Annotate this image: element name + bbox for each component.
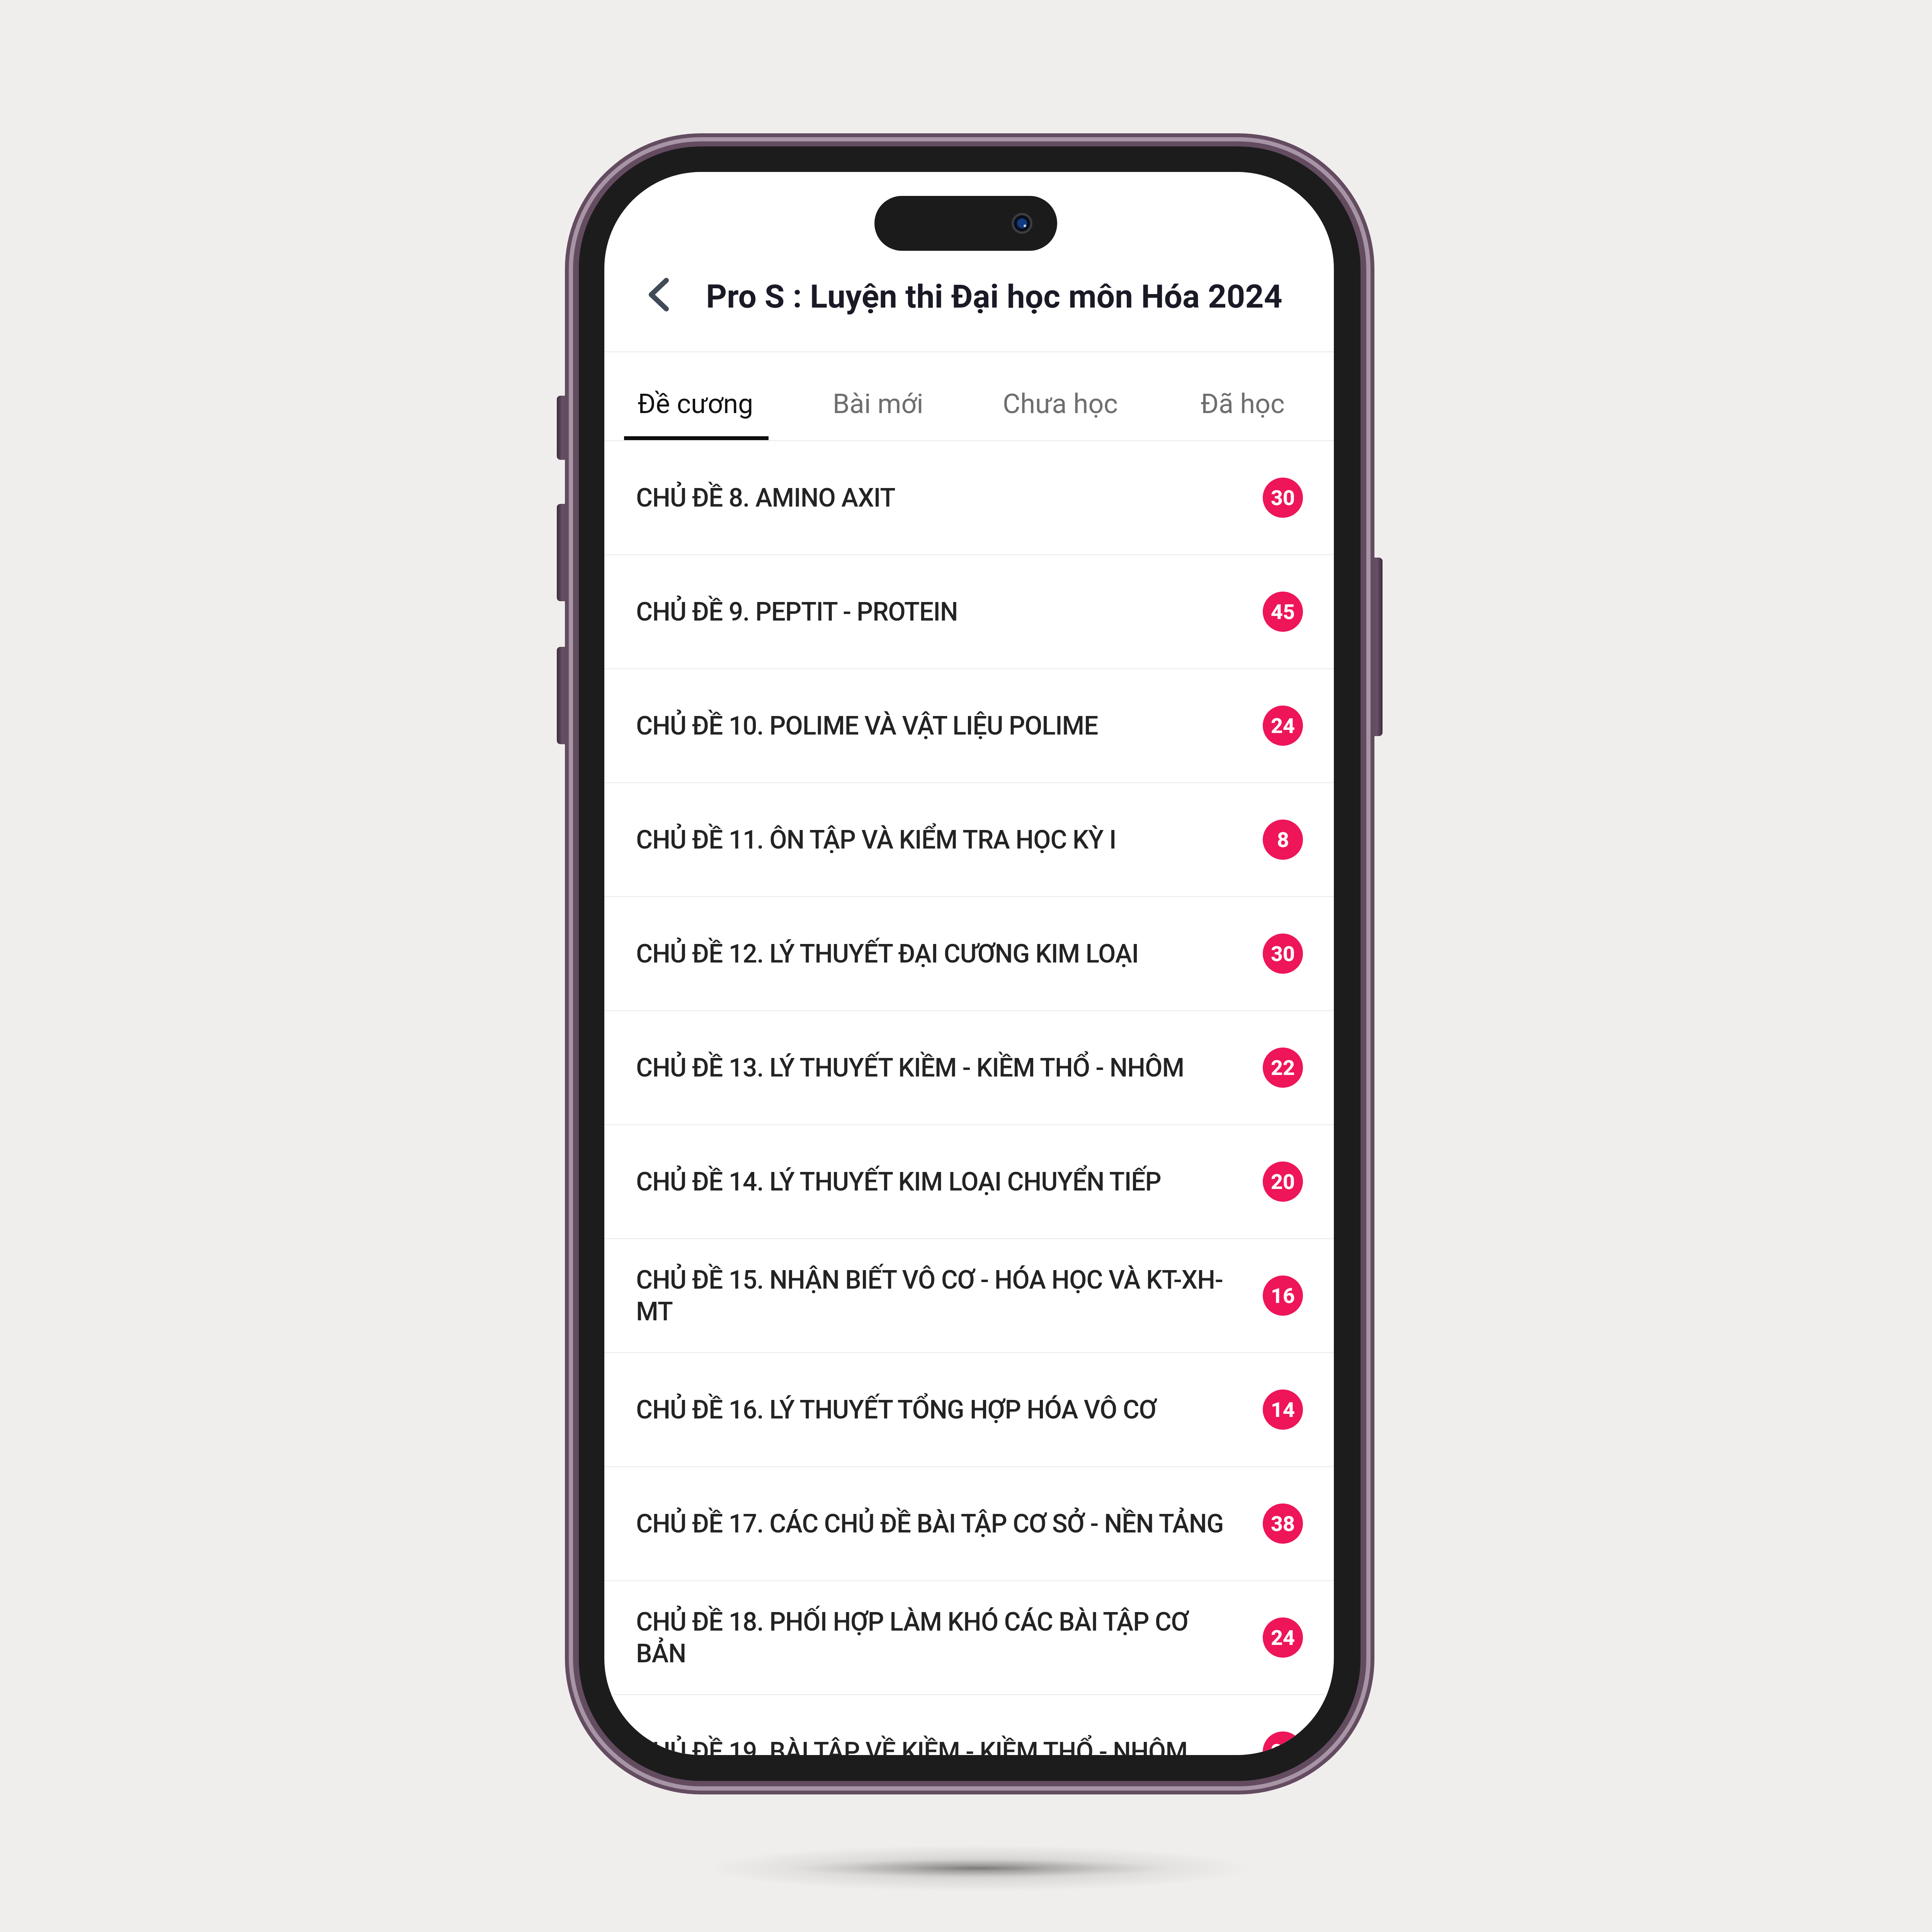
staticText: 45 (1271, 600, 1295, 624)
button[interactable]: CHỦ ĐỀ 11. ÔN TẬP VÀ KIỂM TRA HỌC KỲ I (604, 783, 1334, 896)
staticText: Chưa học (1003, 388, 1118, 420)
staticText: 8 (1277, 828, 1289, 852)
button[interactable]: CHỦ ĐỀ 8. AMINO AXIT (604, 441, 1334, 554)
staticText: 14 (1271, 1398, 1295, 1422)
staticText: Pro S : Luyện thi Đại học môn Hóa 2024 (706, 277, 1282, 315)
staticText: CHỦ ĐỀ 11. ÔN TẬP VÀ KIỂM TRA HỌC KỲ I (636, 825, 1239, 855)
button[interactable]: CHỦ ĐỀ 13. LÝ THUYẾT KIỀM - KIỀM THỔ - N… (604, 1011, 1334, 1124)
staticText: CHỦ ĐỀ 19. BÀI TẬP VỀ KIỀM - KIỀM THỔ - … (636, 1737, 1239, 1755)
button[interactable]: CHỦ ĐỀ 15. NHẬN BIẾT VÔ CƠ - HÓA HỌC VÀ … (604, 1239, 1334, 1352)
staticText: CHỦ ĐỀ 18. PHỐI HỢP LÀM KHÓ CÁC BÀI TẬP … (636, 1607, 1239, 1668)
button[interactable]: Đề cương (604, 352, 787, 440)
button[interactable]: CHỦ ĐỀ 12. LÝ THUYẾT ĐẠI CƯƠNG KIM LOẠI (604, 897, 1334, 1010)
staticText: Bài mới (833, 388, 923, 420)
staticText: CHỦ ĐỀ 13. LÝ THUYẾT KIỀM - KIỀM THỔ - N… (636, 1053, 1239, 1083)
staticText: CHỦ ĐỀ 16. LÝ THUYẾT TỔNG HỢP HÓA VÔ CƠ (636, 1395, 1239, 1425)
staticText: CHỦ ĐỀ 9. PEPTIT - PROTEIN (636, 597, 1239, 627)
button[interactable]: CHỦ ĐỀ 10. POLIME VÀ VẬT LIỆU POLIME (604, 669, 1334, 782)
button[interactable]: Chưa học (969, 352, 1151, 440)
staticText: CHỦ ĐỀ 8. AMINO AXIT (636, 483, 1239, 513)
button[interactable]: CHỦ ĐỀ 16. LÝ THUYẾT TỔNG HỢP HÓA VÔ CƠ (604, 1353, 1334, 1466)
staticText: CHỦ ĐỀ 14. LÝ THUYẾT KIM LOẠI CHUYỂN TIẾ… (636, 1167, 1239, 1197)
staticText: CHỦ ĐỀ 10. POLIME VÀ VẬT LIỆU POLIME (636, 711, 1239, 741)
button[interactable]: Bài mới (787, 352, 969, 440)
button[interactable]: CHỦ ĐỀ 19. BÀI TẬP VỀ KIỀM - KIỀM THỔ - … (604, 1695, 1334, 1755)
staticText: CHỦ ĐỀ 17. CÁC CHỦ ĐỀ BÀI TẬP CƠ SỞ - NỀ… (636, 1509, 1239, 1539)
staticText: CHỦ ĐỀ 15. NHẬN BIẾT VÔ CƠ - HÓA HỌC VÀ … (636, 1265, 1239, 1327)
staticText: 20 (1271, 1170, 1295, 1194)
staticText: 24 (1271, 714, 1295, 738)
staticText: CHỦ ĐỀ 12. LÝ THUYẾT ĐẠI CƯƠNG KIM LOẠI (636, 939, 1239, 969)
button[interactable]: Đã học (1151, 352, 1334, 440)
button[interactable]: CHỦ ĐỀ 14. LÝ THUYẾT KIM LOẠI CHUYỂN TIẾ… (604, 1125, 1334, 1238)
button[interactable]: CHỦ ĐỀ 18. PHỐI HỢP LÀM KHÓ CÁC BÀI TẬP … (604, 1581, 1334, 1694)
staticText: 30 (1271, 486, 1295, 510)
staticText: 38 (1271, 1512, 1295, 1536)
staticText: Đề cương (638, 388, 753, 420)
staticText: 16 (1271, 1284, 1295, 1308)
button[interactable]: Back (628, 265, 690, 325)
staticText: 26 (1271, 1740, 1295, 1755)
staticText: 30 (1271, 942, 1295, 966)
staticText: Đã học (1201, 388, 1285, 420)
button[interactable]: CHỦ ĐỀ 9. PEPTIT - PROTEIN (604, 555, 1334, 668)
staticText: 24 (1271, 1626, 1295, 1650)
staticText: 22 (1271, 1056, 1295, 1080)
button[interactable]: CHỦ ĐỀ 17. CÁC CHỦ ĐỀ BÀI TẬP CƠ SỞ - NỀ… (604, 1467, 1334, 1580)
